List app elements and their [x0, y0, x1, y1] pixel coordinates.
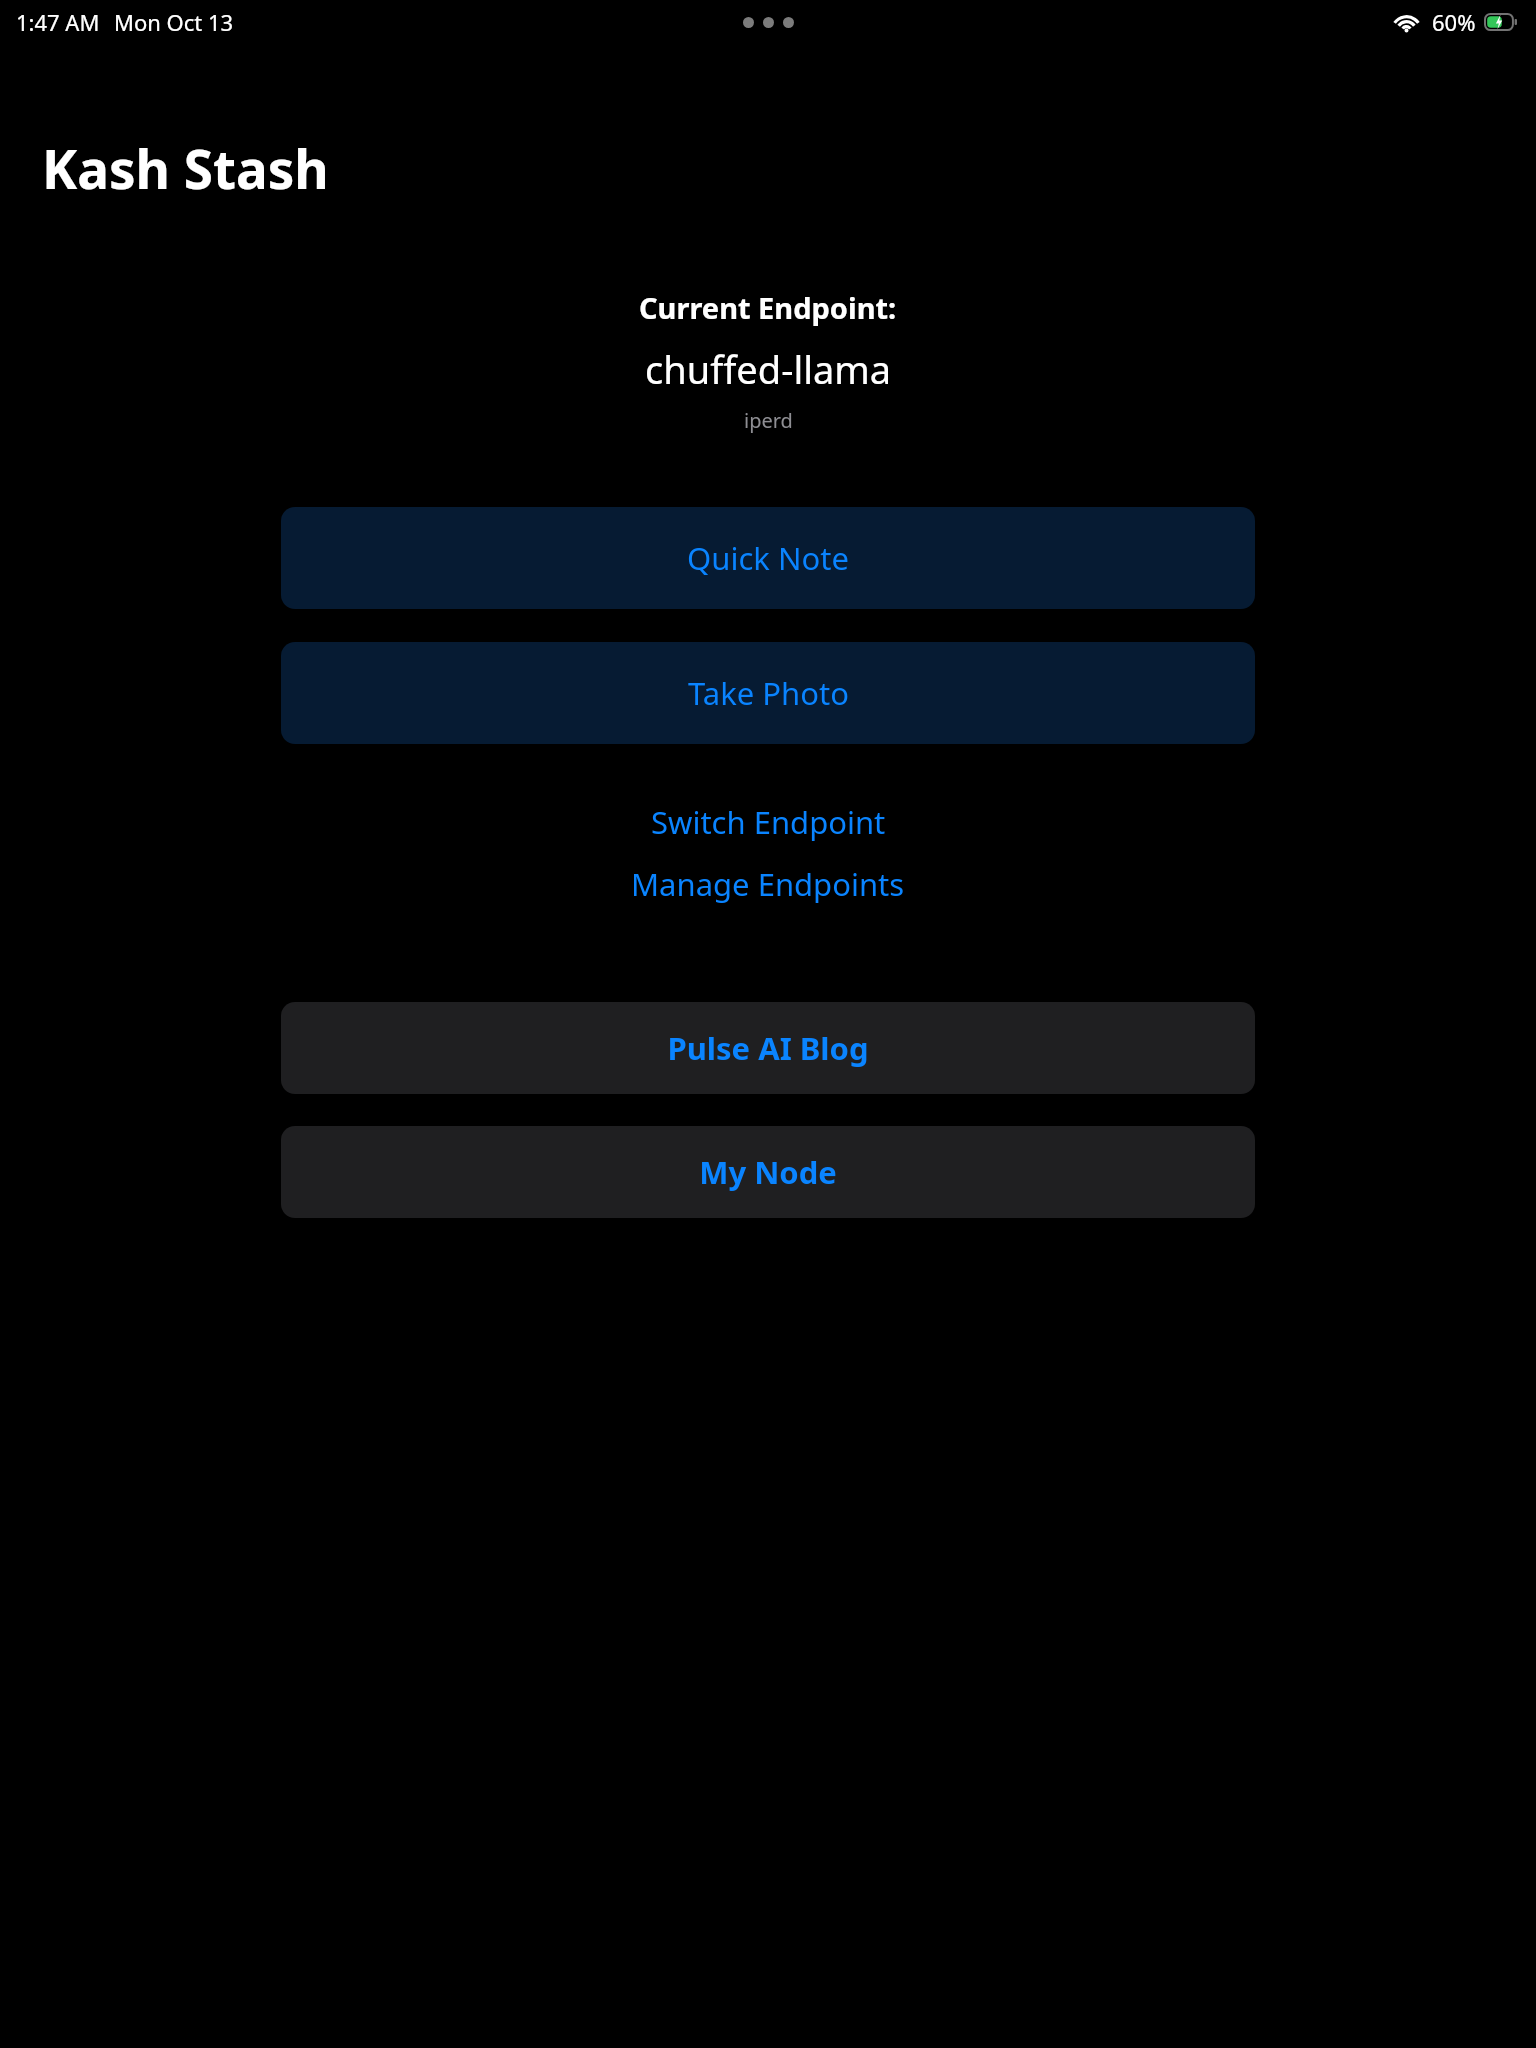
- staticText: 60%: [1432, 7, 1476, 37]
- staticText: Switch Endpoint: [651, 801, 886, 843]
- button[interactable]: Switch Endpoint: [637, 796, 900, 848]
- button[interactable]: Pulse AI Blog: [281, 1002, 1255, 1094]
- staticText: Current Endpoint:: [639, 288, 897, 327]
- staticText: Take Photo: [688, 672, 849, 714]
- staticText: Pulse AI Blog: [667, 1027, 869, 1069]
- staticText: My Node: [699, 1151, 837, 1193]
- staticText: Manage Endpoints: [631, 863, 905, 905]
- staticText: Kash Stash: [42, 132, 329, 204]
- button[interactable]: Manage Endpoints: [617, 858, 919, 910]
- button[interactable]: My Node: [281, 1126, 1255, 1218]
- staticText: iperd: [744, 407, 793, 434]
- staticText: Mon Oct 13: [114, 7, 234, 37]
- staticText: Quick Note: [687, 537, 849, 579]
- button[interactable]: Quick Note: [281, 507, 1255, 609]
- staticText: 1:47 AM: [16, 7, 100, 37]
- staticText: chuffed-llama: [645, 343, 892, 395]
- button[interactable]: Take Photo: [281, 642, 1255, 744]
